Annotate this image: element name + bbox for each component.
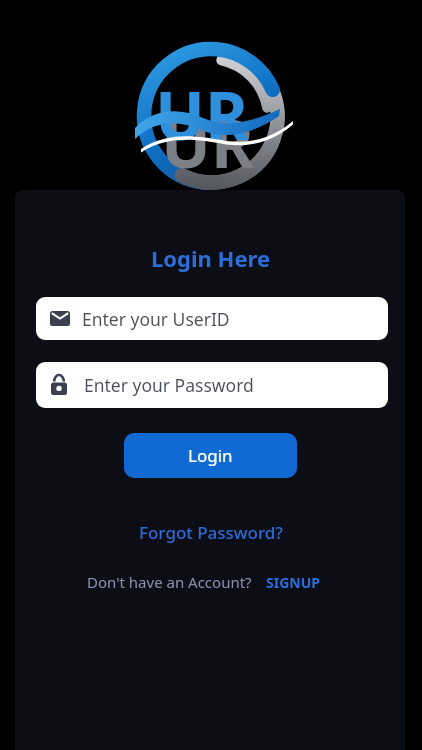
button[interactable]: SIGNUP (266, 573, 320, 592)
button[interactable]: Enter your Password (36, 362, 388, 408)
staticText: Enter your Password (84, 373, 254, 397)
staticText: Don't have an Account? (87, 572, 252, 592)
button[interactable]: Forgot Password? (139, 521, 283, 544)
staticText: UR (161, 97, 255, 187)
staticText: Forgot Password? (139, 521, 283, 544)
staticText: SIGNUP (266, 573, 320, 592)
button[interactable]: Login (124, 433, 297, 478)
button[interactable]: Enter your UserID (36, 297, 388, 340)
staticText: Enter your UserID (82, 307, 230, 331)
staticText: UR (155, 69, 249, 159)
staticText: Login Here (151, 243, 271, 273)
staticText: Login (188, 444, 233, 467)
